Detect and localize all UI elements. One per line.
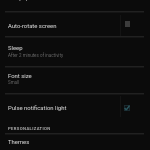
staticText: Font size xyxy=(8,73,32,80)
staticText: After 2 minutes of inactivity xyxy=(8,53,64,58)
staticText: Small xyxy=(8,80,20,85)
staticText: PERSONALIZATION xyxy=(8,126,51,131)
button[interactable]: Pulse notification light toggle xyxy=(124,105,130,111)
staticText: Themes xyxy=(8,139,30,146)
staticText: Sleep xyxy=(8,45,23,52)
button[interactable] xyxy=(0,67,150,93)
button[interactable] xyxy=(0,134,150,150)
staticText: Wallpaper xyxy=(8,0,35,2)
button[interactable] xyxy=(0,0,150,11)
button[interactable] xyxy=(0,12,150,36)
staticText: Auto-rotate screen xyxy=(8,23,57,30)
button[interactable] xyxy=(0,37,150,66)
staticText: Pulse notification light xyxy=(8,105,67,112)
button[interactable] xyxy=(0,94,150,118)
